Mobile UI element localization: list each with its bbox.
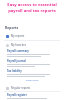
- button[interactable]: Show more: [2, 78, 62, 81]
- staticText: My favorites: [11, 43, 26, 47]
- staticText: Easy access to essential payroll and tax…: [0, 2, 64, 13]
- staticText: Payroll register: [7, 93, 27, 97]
- button[interactable]: My favorites: [2, 41, 62, 49]
- staticText: Tax liability: [7, 69, 22, 73]
- button[interactable]: Tax liability: [2, 69, 62, 77]
- staticText: Payroll summary: [7, 49, 29, 53]
- staticText: Reports: [5, 25, 19, 30]
- button[interactable]: Payroll summary: [2, 49, 62, 57]
- button[interactable]: Payroll register: [2, 93, 62, 99]
- staticText: Payroll journal: [7, 59, 26, 63]
- staticText: Regular reports: [11, 86, 31, 90]
- staticText: My reports: [11, 34, 25, 38]
- button[interactable]: My reports: [2, 32, 62, 40]
- button[interactable]: Regular reports: [2, 84, 62, 92]
- button[interactable]: Payroll journal: [2, 59, 62, 67]
